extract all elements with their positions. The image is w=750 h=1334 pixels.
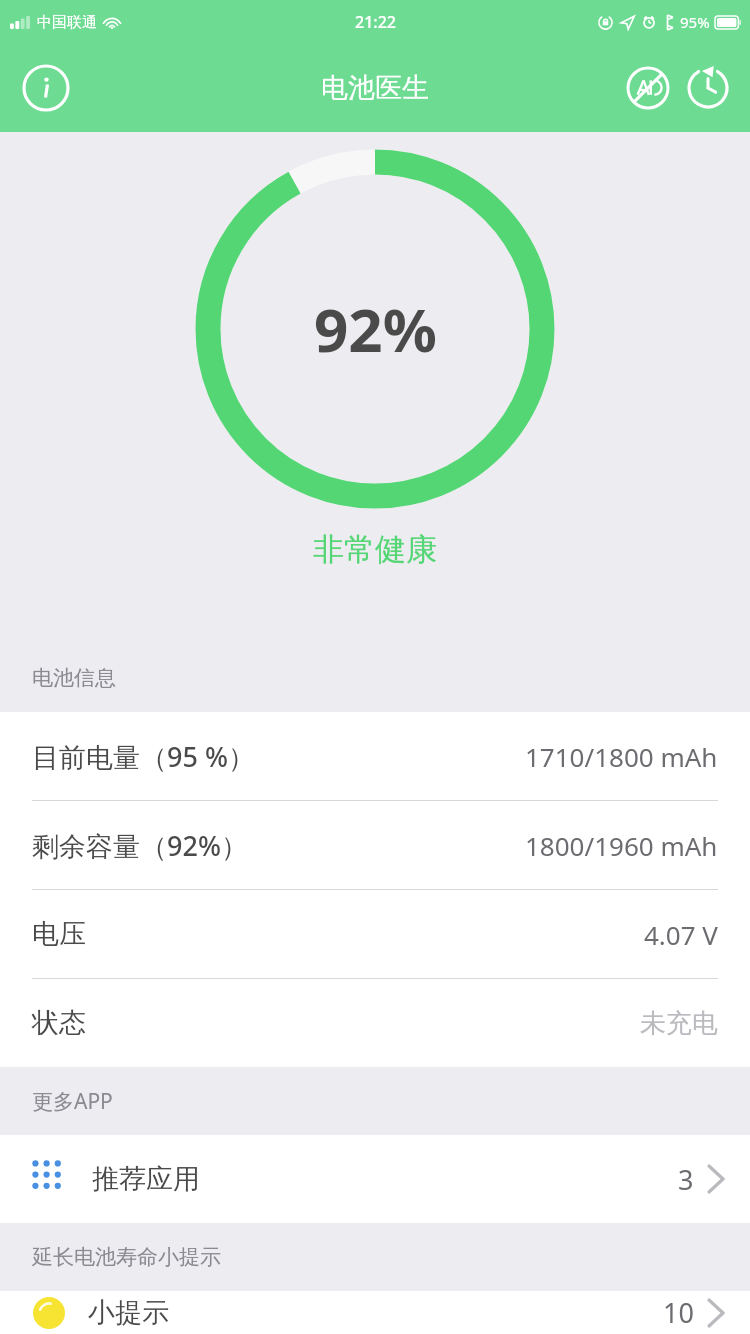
button[interactable]: Remove ads bbox=[618, 58, 678, 118]
staticText: 剩余容量（92%） bbox=[32, 827, 248, 864]
staticText: 21:22 bbox=[355, 11, 396, 33]
staticText: 延长电池寿命小提示 bbox=[32, 1244, 221, 1270]
staticText: 10 bbox=[663, 1294, 694, 1331]
staticText: 中国联通 bbox=[37, 13, 97, 32]
staticText: 1710/1800 mAh bbox=[525, 739, 718, 774]
button[interactable]: 剩余容量（92%） bbox=[0, 801, 750, 889]
staticText: 未充电 bbox=[640, 1007, 718, 1040]
staticText: 电压 bbox=[32, 917, 86, 951]
staticText: 更多APP bbox=[32, 1087, 113, 1116]
staticText: 电池信息 bbox=[32, 665, 116, 691]
staticText: 1800/1960 mAh bbox=[525, 828, 718, 863]
button[interactable]: 小提示 bbox=[0, 1291, 750, 1334]
staticText: 92% bbox=[314, 288, 437, 370]
button[interactable]: About bbox=[18, 60, 74, 116]
button[interactable]: 推荐应用 bbox=[0, 1135, 750, 1223]
staticText: 95% bbox=[680, 12, 710, 32]
button[interactable]: 目前电量（95 %） bbox=[0, 712, 750, 800]
staticText: 目前电量（95 %） bbox=[32, 738, 255, 775]
staticText: 电池医生 bbox=[321, 71, 429, 105]
button[interactable]: 状态 bbox=[0, 979, 750, 1067]
staticText: 推荐应用 bbox=[92, 1162, 200, 1196]
staticText: 状态 bbox=[32, 1006, 86, 1040]
staticText: 4.07 V bbox=[644, 917, 718, 952]
button[interactable]: 电压 bbox=[0, 890, 750, 978]
staticText: 小提示 bbox=[88, 1296, 169, 1330]
staticText: 非常健康 bbox=[313, 530, 437, 569]
button[interactable]: History bbox=[678, 58, 738, 118]
staticText: 3 bbox=[678, 1161, 694, 1198]
